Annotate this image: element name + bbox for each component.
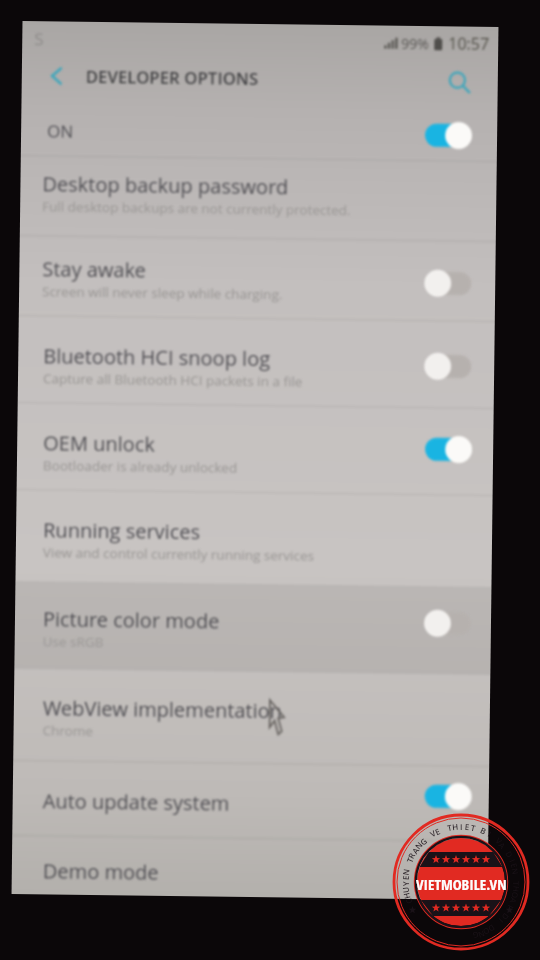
button[interactable]: Navigate up bbox=[35, 54, 77, 97]
staticText: D bbox=[503, 849, 516, 859]
staticText: T bbox=[404, 855, 416, 864]
staticText: A bbox=[496, 839, 509, 851]
staticText: View and control currently running servi… bbox=[43, 543, 315, 565]
staticText: Stay awake bbox=[42, 255, 146, 284]
staticText: WebView implementation bbox=[43, 694, 283, 724]
staticText: B bbox=[479, 824, 489, 837]
staticText: N bbox=[476, 928, 487, 941]
button[interactable]: OEM unlock bbox=[43, 429, 238, 477]
staticText: E bbox=[509, 862, 521, 870]
staticText: 99% bbox=[401, 34, 429, 53]
staticText: I bbox=[460, 821, 463, 832]
staticText: Bootloader is already unlocked bbox=[43, 456, 238, 477]
staticText: Full desktop backups are not currently p… bbox=[42, 197, 351, 219]
button[interactable]: Stay awake bbox=[42, 255, 283, 303]
staticText: VIETMOBILE.VN bbox=[416, 874, 507, 894]
button[interactable]: Bluetooth HCI snoop log bbox=[43, 342, 303, 391]
button[interactable]: OEM unlock toggle bbox=[420, 431, 476, 468]
staticText: N bbox=[412, 839, 425, 851]
staticText: H bbox=[451, 821, 460, 832]
staticText: V bbox=[428, 827, 438, 839]
button[interactable]: Running services bbox=[43, 516, 315, 565]
button[interactable]: ON toggle bbox=[420, 117, 476, 154]
staticText: A bbox=[409, 845, 422, 856]
staticText: Capture all Bluetooth HCI packets in a f… bbox=[43, 369, 303, 391]
button[interactable]: Auto update system bbox=[42, 787, 230, 817]
staticText: Bluetooth HCI snoop log bbox=[43, 342, 270, 372]
button[interactable]: Picture color mode bbox=[43, 605, 220, 652]
staticText: N bbox=[399, 867, 412, 876]
staticText: ON bbox=[47, 119, 74, 143]
staticText: G bbox=[417, 835, 429, 847]
staticText: E bbox=[433, 825, 442, 837]
staticText: 10:57 bbox=[448, 32, 489, 55]
staticText: Desktop backup password bbox=[42, 170, 289, 200]
staticText: Demo mode bbox=[43, 857, 159, 886]
staticText: Use sRGB bbox=[43, 632, 104, 651]
staticText: T bbox=[446, 821, 453, 833]
staticText: O bbox=[481, 925, 492, 938]
staticText: DEVELOPER OPTIONS bbox=[86, 65, 259, 89]
button[interactable]: Auto update system toggle bbox=[420, 778, 476, 815]
staticText: D bbox=[499, 911, 512, 922]
button[interactable]: ON bbox=[47, 119, 74, 143]
staticText: T bbox=[470, 822, 477, 833]
staticText: H bbox=[400, 891, 413, 900]
button[interactable]: Search bbox=[438, 61, 481, 104]
staticText: Picture color mode bbox=[43, 605, 220, 634]
staticText: Y bbox=[400, 881, 411, 886]
staticText: R bbox=[405, 850, 418, 861]
staticText: O bbox=[509, 891, 521, 900]
button[interactable]: Picture color mode toggle bbox=[420, 605, 476, 642]
other: VIETMOBILE.VN watermark bbox=[386, 807, 536, 957]
staticText: E bbox=[400, 875, 411, 880]
button[interactable]: WebView implementation bbox=[42, 694, 283, 742]
staticText: G bbox=[471, 929, 480, 942]
button[interactable] bbox=[14, 581, 491, 675]
button[interactable]: Desktop backup password bbox=[42, 170, 352, 219]
staticText: D bbox=[486, 922, 497, 935]
staticText: Running services bbox=[43, 516, 200, 545]
staticText: Auto update system bbox=[42, 787, 230, 817]
staticText: S bbox=[34, 27, 44, 50]
staticText: I bbox=[506, 903, 517, 911]
staticText: Screen will never sleep while charging. bbox=[42, 282, 283, 303]
button[interactable]: Demo mode bbox=[43, 857, 159, 886]
staticText: C bbox=[402, 896, 415, 905]
staticText: E bbox=[464, 821, 470, 832]
staticText: Chrome bbox=[42, 721, 94, 740]
staticText: OEM unlock bbox=[43, 429, 155, 458]
staticText: I bbox=[486, 828, 494, 839]
staticText: U bbox=[400, 886, 411, 894]
staticText: V bbox=[493, 835, 505, 846]
button[interactable]: Stay awake toggle bbox=[420, 265, 476, 302]
button[interactable]: Bluetooth HCI snoop log toggle bbox=[420, 348, 476, 385]
